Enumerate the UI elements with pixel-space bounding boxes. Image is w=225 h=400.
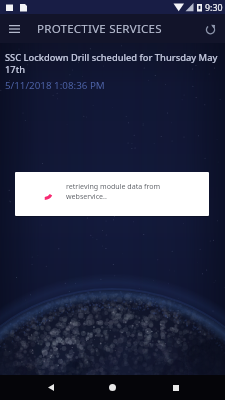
button[interactable]: Recents [163, 375, 188, 400]
button[interactable]: Refresh [196, 14, 225, 43]
button[interactable]: Menu [0, 14, 29, 43]
staticText: retrieving module data from webservice.. [66, 181, 162, 201]
staticText: SSC Lockdown Drill scheduled for Thursda… [5, 51, 220, 76]
button[interactable]: retrieving module data from webservice.. [15, 172, 209, 216]
button[interactable]: Back [38, 375, 63, 400]
staticText: PROTECTIVE SERVICES [37, 21, 162, 37]
staticText: 5/11/2018 1:08:36 PM [5, 79, 105, 92]
staticText: 9:30 [205, 2, 223, 14]
button[interactable]: Home [100, 375, 125, 400]
